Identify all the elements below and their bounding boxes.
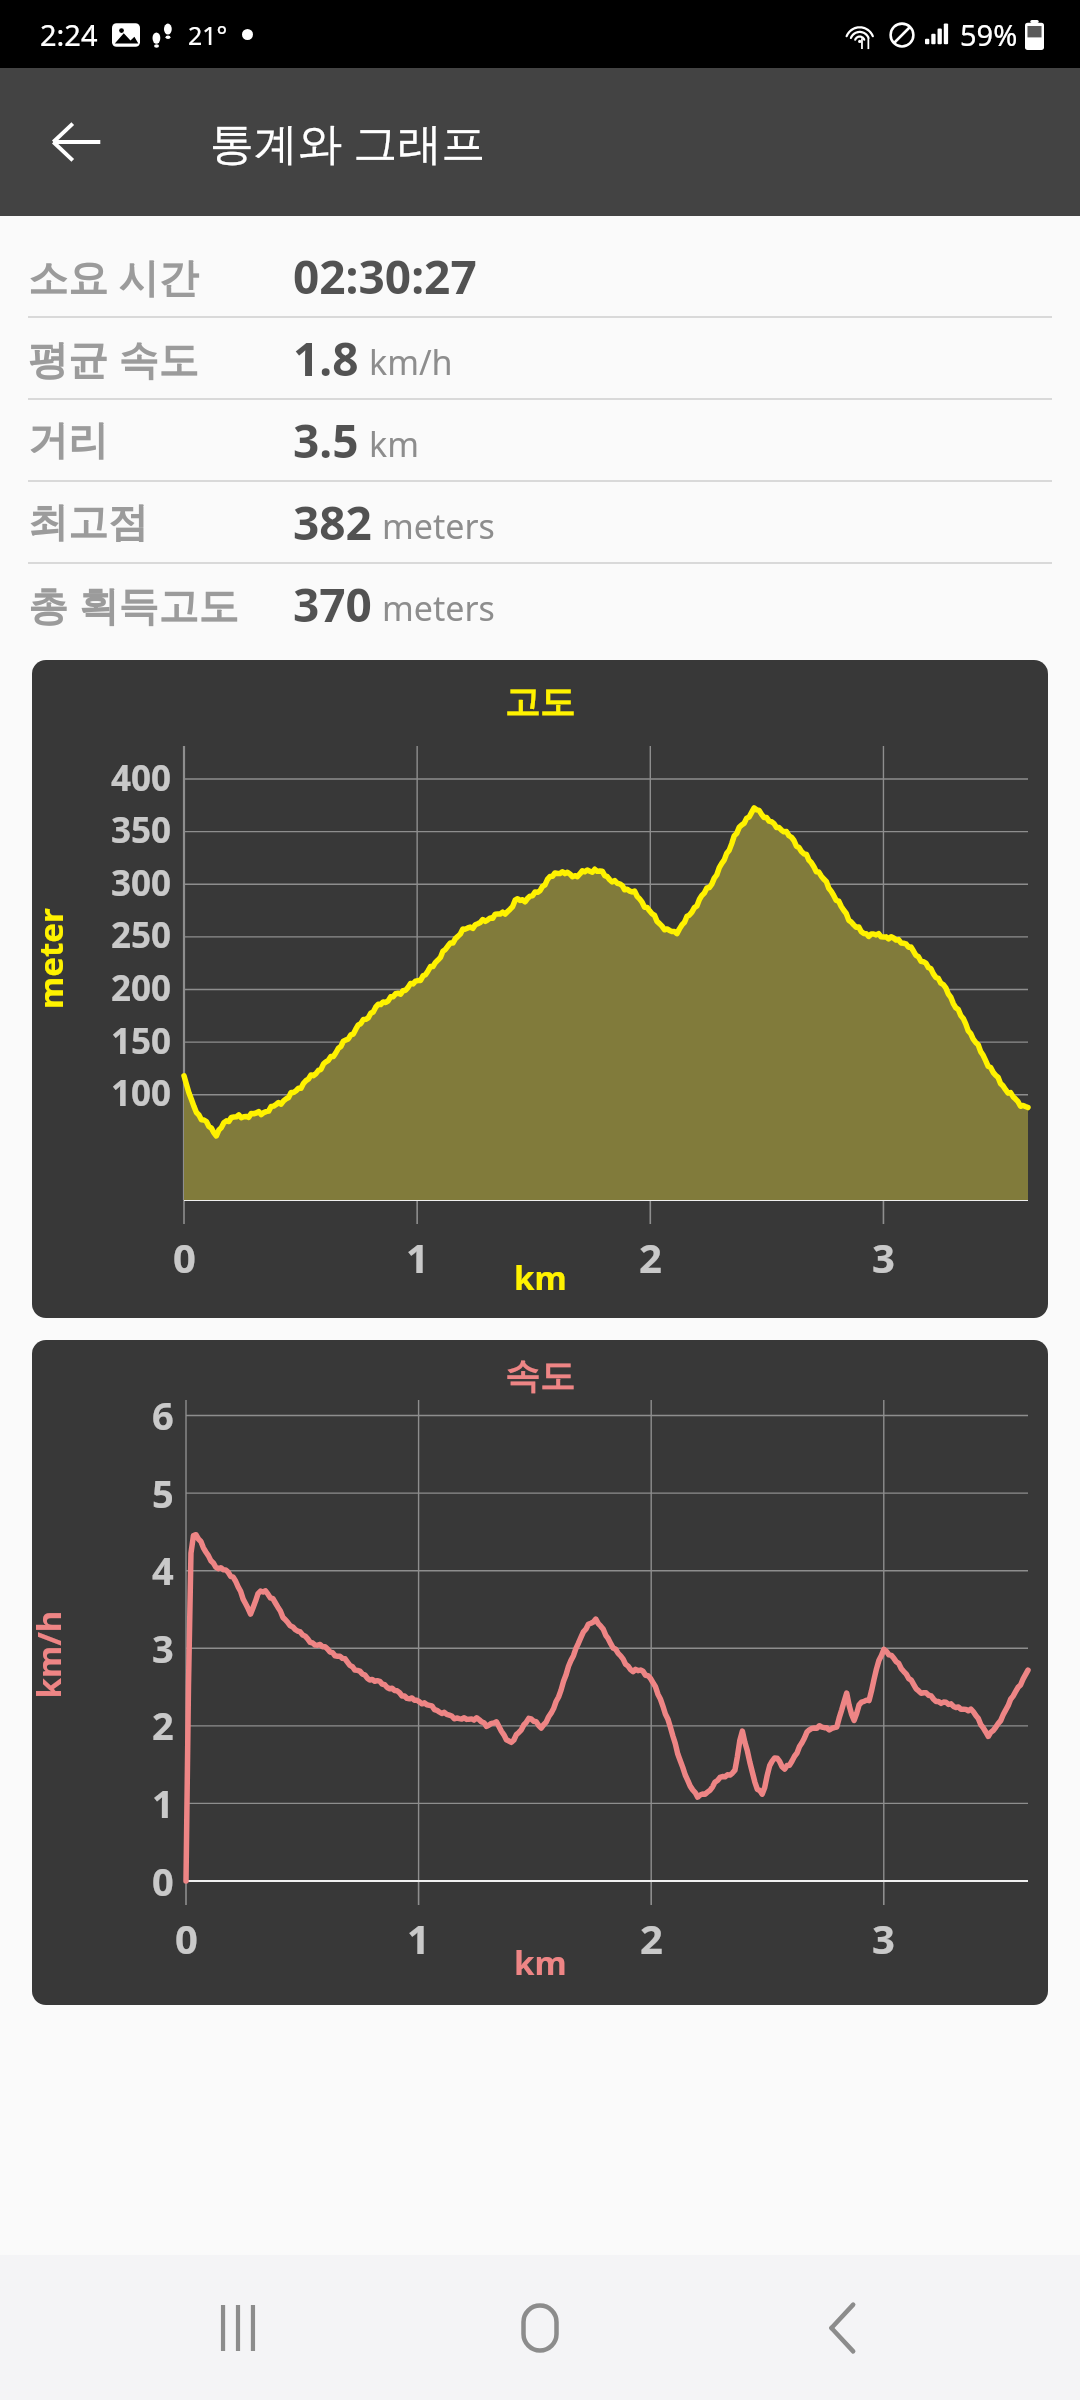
- button[interactable]: 소요 시간: [28, 236, 1052, 316]
- staticText: 2:24: [40, 15, 98, 54]
- staticText: 1: [152, 1777, 174, 1829]
- button[interactable]: 거리: [28, 400, 1052, 480]
- staticText: km: [514, 1255, 567, 1300]
- staticText: 6: [152, 1389, 174, 1441]
- staticText: 200: [111, 964, 172, 1012]
- staticText: 4: [152, 1544, 174, 1596]
- staticText: 속도: [505, 1354, 575, 1398]
- staticText: meters: [382, 503, 495, 549]
- staticText: 100: [111, 1069, 172, 1117]
- staticText: 0: [173, 1230, 196, 1284]
- staticText: 2: [639, 1230, 662, 1284]
- staticText: 59%: [960, 15, 1018, 54]
- staticText: 소요 시간: [28, 249, 199, 304]
- staticText: km: [369, 421, 419, 467]
- staticText: 370: [293, 573, 372, 636]
- staticText: 2: [640, 1911, 663, 1965]
- button[interactable]: 100: [32, 660, 1048, 1318]
- staticText: 5: [152, 1467, 174, 1519]
- staticText: 0: [152, 1855, 174, 1907]
- button[interactable]: 총 획득고도: [28, 564, 1052, 644]
- staticText: 400: [111, 754, 172, 802]
- staticText: 거리: [28, 415, 108, 465]
- staticText: 1: [406, 1230, 429, 1284]
- staticText: 평균 속도: [28, 331, 199, 386]
- staticText: 02:30:27: [293, 245, 477, 308]
- button[interactable]: 0: [32, 1340, 1048, 2005]
- staticText: 고도: [505, 680, 575, 724]
- staticText: 2: [152, 1699, 174, 1751]
- staticText: 3: [872, 1230, 895, 1284]
- staticText: 0: [175, 1911, 198, 1965]
- staticText: 1: [407, 1911, 430, 1965]
- button[interactable]: Home: [475, 2263, 605, 2393]
- staticText: 250: [111, 911, 172, 959]
- staticText: 총 획득고도: [28, 577, 239, 632]
- staticText: 3: [152, 1622, 174, 1674]
- staticText: 최고점: [28, 497, 148, 547]
- staticText: 150: [111, 1017, 172, 1065]
- button[interactable]: Back: [26, 92, 126, 192]
- staticText: meters: [382, 585, 495, 631]
- staticText: 300: [111, 859, 172, 907]
- staticText: 382: [293, 491, 372, 554]
- staticText: km/h: [369, 339, 453, 385]
- staticText: km: [514, 1940, 567, 1985]
- button[interactable]: 최고점: [28, 482, 1052, 562]
- staticText: 통계와 그래프: [210, 112, 486, 172]
- staticText: 1.8: [293, 327, 359, 390]
- staticText: meter: [32, 908, 73, 1009]
- button[interactable]: Back: [778, 2263, 908, 2393]
- staticText: 21°: [188, 18, 228, 52]
- staticText: 3.5: [293, 409, 359, 472]
- staticText: 3: [872, 1911, 895, 1965]
- staticText: 350: [111, 806, 172, 854]
- staticText: km/h: [32, 1610, 70, 1698]
- button[interactable]: 평균 속도: [28, 318, 1052, 398]
- button[interactable]: Recent apps: [173, 2263, 303, 2393]
